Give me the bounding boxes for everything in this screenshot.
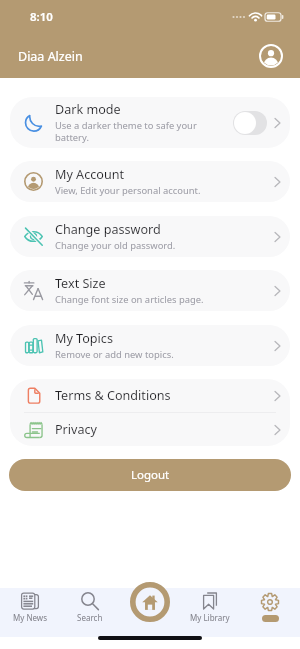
staticText: Use a darker theme to safe your battery. [55,119,197,144]
button[interactable]: My Account [10,161,290,202]
staticText: My News [13,612,47,623]
staticText: Change font size on articles page. [55,293,204,306]
staticText: Dark mode [55,101,121,118]
staticText: 8:10 [30,9,53,25]
staticText: Remove or add new topics. [55,348,174,361]
button[interactable]: Logout [9,459,291,491]
button[interactable]: Terms & Conditions [10,379,290,412]
staticText: Privacy [55,421,274,438]
staticText: Text Size [55,275,106,292]
staticText: My Account [55,166,124,183]
button[interactable]: My Topics [10,325,290,366]
staticText: My Library [190,612,230,623]
button[interactable]: Settings [240,588,300,622]
staticText: Change password [55,221,161,238]
button[interactable]: Home [130,582,170,622]
button[interactable]: My Library [180,588,240,623]
button[interactable]: Account [259,44,283,68]
staticText: My Topics [55,330,113,347]
button[interactable]: My News [0,588,60,623]
staticText: Diaa Alzein [18,48,83,65]
staticText: Logout [131,467,170,483]
button[interactable]: Change password [10,216,290,257]
button[interactable]: Dark mode [10,97,290,148]
button[interactable]: Dark mode toggle [233,111,267,135]
button[interactable]: Terms & Conditions [10,379,290,446]
staticText: Change your old password. [55,239,176,252]
button[interactable]: Search [60,588,120,623]
button[interactable]: Privacy [10,413,290,446]
button[interactable]: Text Size [10,270,290,311]
staticText: Terms & Conditions [55,387,274,404]
staticText: View, Edit your personal account. [55,184,201,197]
staticText: Search [77,612,103,623]
